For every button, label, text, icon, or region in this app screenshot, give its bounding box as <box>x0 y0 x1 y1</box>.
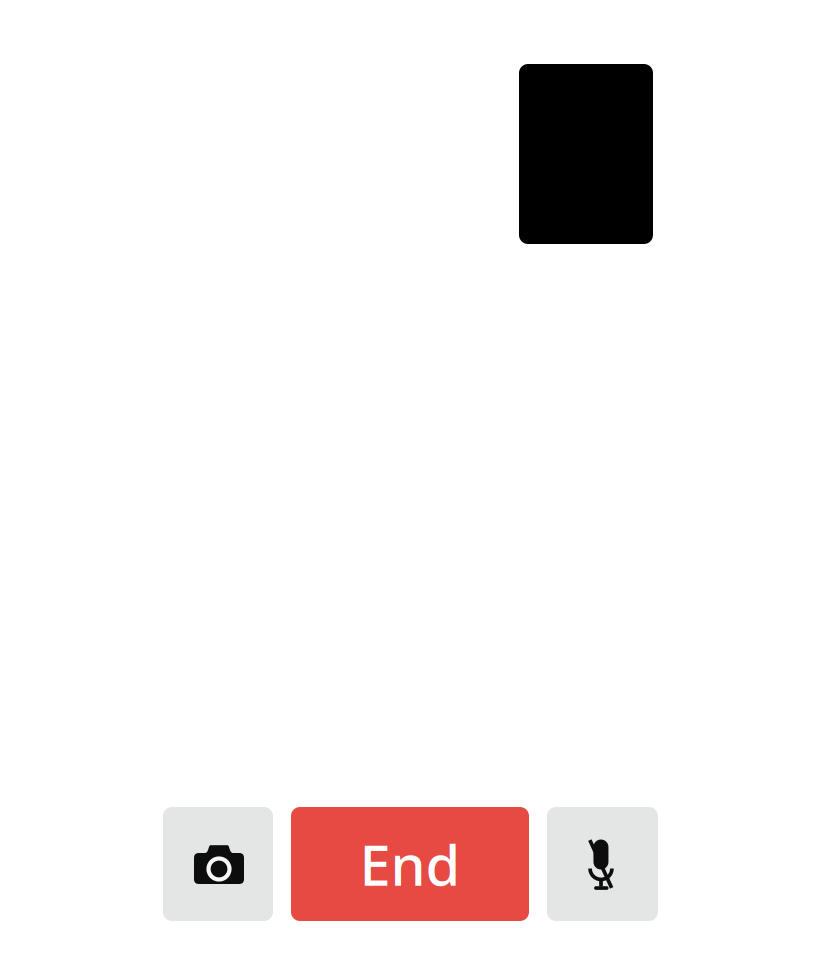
staticText: End <box>359 827 460 901</box>
button[interactable]: End <box>291 807 529 921</box>
button[interactable]: Flip Camera <box>163 807 273 921</box>
button[interactable]: Unmute <box>547 807 658 921</box>
